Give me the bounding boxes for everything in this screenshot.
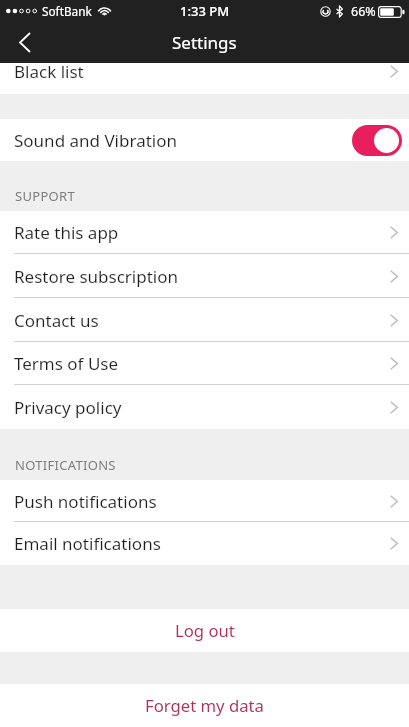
staticText: Privacy policy [14, 396, 122, 419]
button[interactable]: Back [0, 22, 46, 63]
button[interactable]: Restore subscription [0, 254, 409, 298]
staticText: 66% [351, 3, 376, 20]
button[interactable]: Privacy policy [0, 385, 409, 429]
staticText: Sound and Vibration [14, 129, 177, 152]
button[interactable]: Forget my data [0, 684, 409, 727]
staticText: 1:33 PM [180, 2, 230, 20]
staticText: Log out [175, 619, 235, 642]
staticText: Email notifications [14, 532, 161, 555]
button[interactable]: Black list [0, 63, 409, 94]
button[interactable]: Push notifications [0, 480, 409, 522]
button[interactable]: Rate this app [0, 211, 409, 254]
staticText: Black list [14, 60, 84, 83]
staticText: Contact us [14, 309, 99, 332]
staticText: Settings [172, 31, 237, 54]
staticText: Forget my data [145, 694, 264, 717]
staticText: Rate this app [14, 221, 119, 244]
staticText: SoftBank [42, 3, 92, 19]
staticText: NOTIFICATIONS [15, 456, 116, 474]
staticText: Restore subscription [14, 265, 178, 288]
staticText: SUPPORT [15, 187, 75, 205]
button[interactable]: Email notifications [0, 522, 409, 565]
button[interactable]: Log out [0, 609, 409, 652]
button[interactable]: Terms of Use [0, 342, 409, 385]
button[interactable]: Sound and Vibration [0, 119, 409, 161]
staticText: Terms of Use [14, 352, 119, 375]
button[interactable]: Contact us [0, 298, 409, 342]
staticText: Push notifications [14, 490, 157, 513]
